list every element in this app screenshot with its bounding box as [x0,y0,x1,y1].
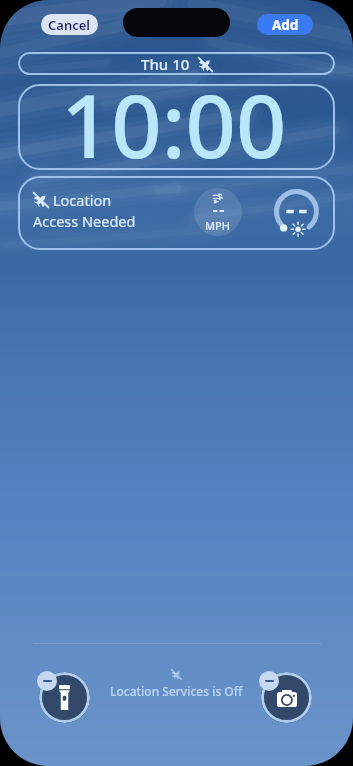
button[interactable]: Add [257,14,313,35]
staticText: Thu 10 [141,54,190,74]
button[interactable]: Remove Flashlight [37,671,57,691]
staticText: Location [53,190,112,210]
button[interactable]: Thu 10 [18,52,335,75]
button[interactable]: 10:00 [18,84,335,170]
staticText: 10:00 [61,64,287,184]
button[interactable]: Wind speed [194,188,242,236]
button[interactable]: Remove Camera [259,671,279,691]
button[interactable]: Location Access Needed [33,190,136,231]
button[interactable]: Camera [261,672,312,723]
staticText: Access Needed [33,211,136,231]
staticText: MPH [205,218,231,233]
staticText: Location Services is Off [110,683,243,699]
button[interactable]: Cancel [41,14,98,35]
button[interactable]: UV index [274,189,319,234]
button[interactable]: Flashlight [39,672,90,723]
staticText: Add [272,16,299,34]
staticText: Cancel [48,16,91,34]
